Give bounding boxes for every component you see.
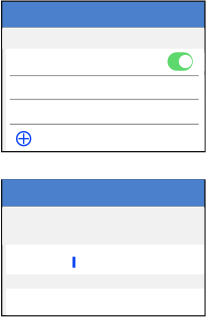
button[interactable]: Text field — [6, 245, 204, 274]
button[interactable]: Add item — [17, 131, 31, 145]
button[interactable]: Enabled — [167, 52, 193, 71]
